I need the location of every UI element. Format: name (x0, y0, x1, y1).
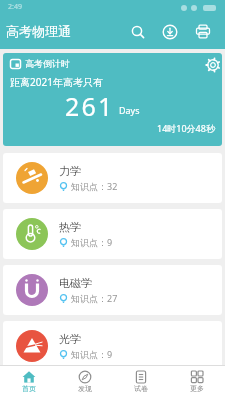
button[interactable]: 首页 (0, 366, 57, 400)
staticText: 发现 (78, 384, 92, 393)
staticText: 更多 (190, 384, 204, 393)
staticText: 电磁学 (59, 276, 92, 290)
button[interactable]: 更多 (169, 366, 225, 400)
button[interactable]: 发现 (57, 366, 113, 400)
staticText: 光学 (59, 332, 81, 346)
button[interactable]: 试卷 (113, 366, 169, 400)
staticText: 试卷 (134, 384, 148, 393)
staticText: 14时10分48秒 (157, 122, 215, 134)
staticText: 2:49 (8, 2, 22, 12)
button[interactable]: 电磁学 (3, 265, 222, 315)
staticText: Days (119, 104, 140, 116)
staticText: 热学 (59, 220, 81, 234)
button[interactable] (128, 22, 148, 42)
staticText: 知识点：9 (71, 348, 113, 360)
button[interactable]: 热学 (3, 209, 222, 259)
staticText: 知识点：32 (71, 180, 118, 192)
staticText: 力学 (59, 164, 81, 178)
button[interactable] (205, 57, 221, 73)
button[interactable]: 高考倒计时 (3, 53, 222, 146)
staticText: 高考倒计时 (25, 58, 70, 69)
button[interactable]: 力学 (3, 153, 222, 203)
staticText: 261 (65, 89, 115, 123)
staticText: 高考物理通 (6, 23, 71, 39)
staticText: 首页 (22, 384, 36, 393)
staticText: 距离2021年高考只有 (10, 75, 103, 89)
staticText: 知识点：9 (71, 236, 113, 248)
button[interactable] (193, 22, 213, 42)
button[interactable]: 光学 (3, 321, 222, 371)
staticText: 知识点：27 (71, 292, 118, 304)
button[interactable] (160, 22, 180, 42)
